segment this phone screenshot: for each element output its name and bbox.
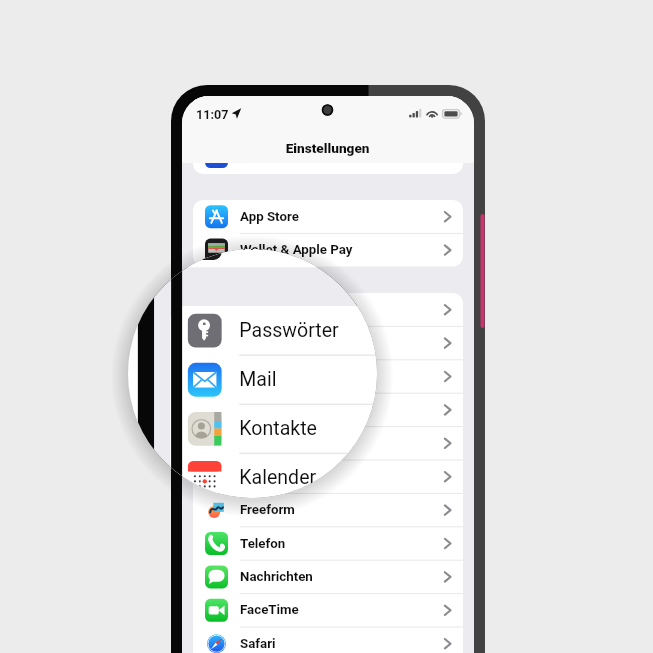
button[interactable]: Bildschirmlupe: [128, 249, 377, 498]
